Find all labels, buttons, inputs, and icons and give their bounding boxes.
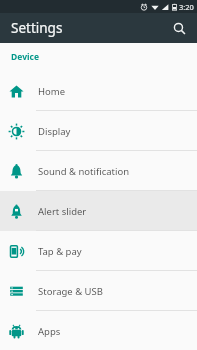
button[interactable]: Sound & notification bbox=[0, 151, 197, 191]
staticText: Settings bbox=[11, 19, 63, 37]
staticText: Display bbox=[38, 125, 71, 138]
button[interactable]: Apps bbox=[0, 311, 197, 350]
staticText: Tap & pay bbox=[38, 245, 82, 258]
staticText: Alert slider bbox=[38, 205, 87, 218]
staticText: Storage & USB bbox=[38, 285, 103, 298]
button[interactable]: Storage & USB bbox=[0, 271, 197, 311]
staticText: Sound & notification bbox=[38, 165, 130, 178]
button[interactable]: Alert slider bbox=[0, 191, 197, 231]
button[interactable]: Search bbox=[167, 16, 191, 40]
staticText: Device bbox=[11, 51, 39, 63]
button[interactable]: Tap & pay bbox=[0, 231, 197, 271]
button[interactable]: Display bbox=[0, 111, 197, 151]
staticText: Home bbox=[38, 85, 66, 98]
staticText: 3:20 bbox=[179, 2, 194, 12]
staticText: Apps bbox=[38, 325, 61, 338]
button[interactable]: Home bbox=[0, 71, 197, 111]
